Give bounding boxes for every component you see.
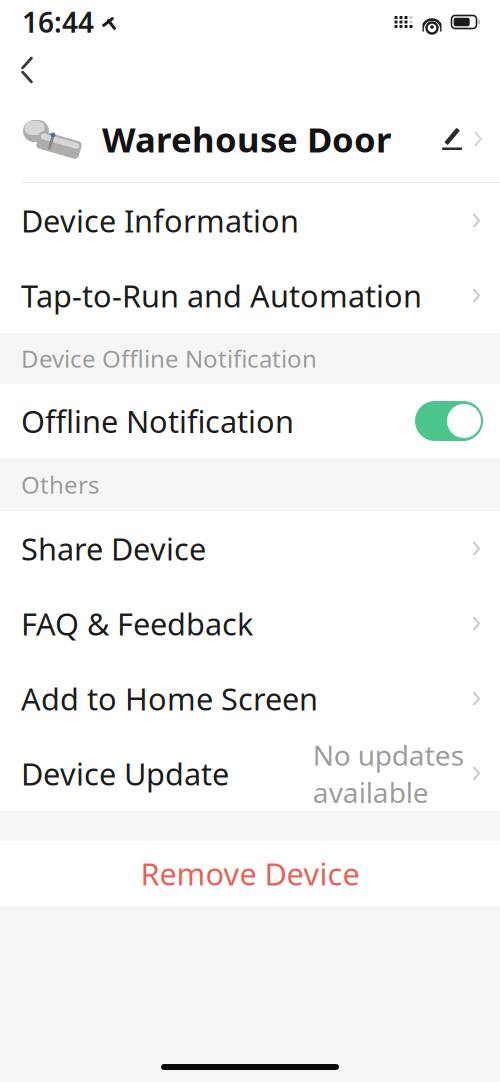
staticText: Device Information bbox=[21, 200, 299, 241]
button[interactable]: Device Information bbox=[0, 183, 500, 258]
button[interactable]: Offline Notification bbox=[0, 384, 500, 458]
staticText: Add to Home Screen bbox=[21, 678, 318, 719]
staticText: 16:44 bbox=[22, 3, 94, 41]
button[interactable]: Warehouse Door bbox=[0, 96, 500, 183]
staticText: Device Offline Notification bbox=[21, 343, 317, 374]
staticText: FAQ & Feedback bbox=[21, 603, 253, 644]
staticText: Offline Notification bbox=[21, 401, 294, 441]
staticText: Others bbox=[21, 469, 99, 500]
button[interactable]: Add to Home Screen bbox=[0, 661, 500, 736]
staticText: No updates available bbox=[313, 736, 464, 811]
staticText: Device Update bbox=[21, 753, 229, 794]
staticText: Share Device bbox=[21, 528, 206, 569]
button[interactable]: Remove Device bbox=[0, 841, 500, 906]
button[interactable]: Tap-to-Run and Automation bbox=[0, 258, 500, 333]
button[interactable]: Back bbox=[0, 47, 48, 93]
staticText: Warehouse Door bbox=[102, 116, 391, 162]
staticText: Tap-to-Run and Automation bbox=[21, 275, 422, 316]
staticText: Remove Device bbox=[140, 853, 359, 894]
button[interactable]: Share Device bbox=[0, 511, 500, 586]
button[interactable]: FAQ & Feedback bbox=[0, 586, 500, 661]
button[interactable]: Device Update bbox=[0, 736, 500, 811]
